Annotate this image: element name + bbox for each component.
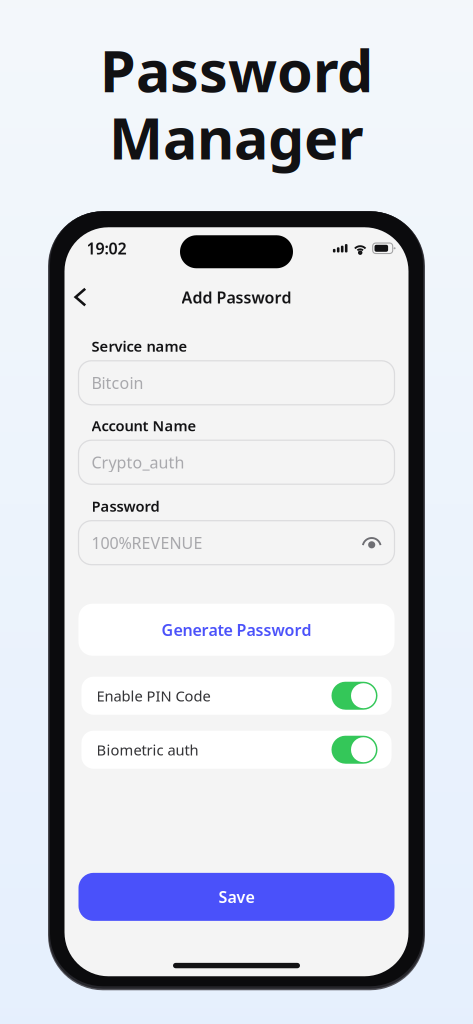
button[interactable]: Crypto_auth	[78, 440, 394, 484]
staticText: Enable PIN Code	[96, 686, 210, 705]
staticText: 19:02	[86, 238, 126, 259]
button[interactable]: Generate Password	[78, 604, 394, 656]
button[interactable]: Bitcoin	[78, 361, 394, 405]
staticText: Add Password	[181, 287, 291, 308]
button[interactable]: 100%REVENUE	[78, 521, 394, 565]
staticText: Save	[218, 886, 254, 907]
button[interactable]: Enable PIN Code	[81, 677, 391, 715]
staticText: Password	[91, 496, 159, 516]
staticText: Account Name	[91, 416, 196, 435]
button[interactable]: Biometric auth	[81, 731, 391, 769]
staticText: Biometric auth	[96, 740, 198, 759]
staticText: Service name	[91, 336, 187, 356]
button[interactable]: Save	[78, 873, 394, 921]
button[interactable]: Back	[62, 280, 98, 314]
staticText: Manager	[109, 99, 364, 175]
staticText: Crypto_auth	[91, 452, 184, 473]
staticText: Password	[100, 32, 373, 108]
staticText: Bitcoin	[91, 372, 143, 393]
staticText: 100%REVENUE	[91, 532, 202, 553]
staticText: Generate Password	[161, 619, 311, 640]
